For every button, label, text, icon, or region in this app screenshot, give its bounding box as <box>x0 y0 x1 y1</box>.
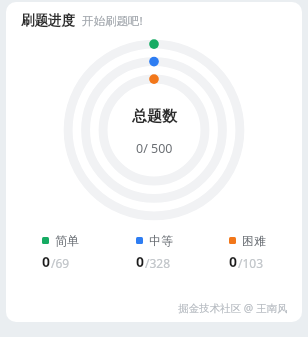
staticText: 刷题进度 <box>21 12 75 29</box>
staticText: 中等 <box>149 233 173 248</box>
button[interactable]: 简单 <box>42 233 79 271</box>
staticText: 简单 <box>55 233 79 248</box>
staticText: 0 <box>42 252 51 271</box>
button[interactable]: 困难 <box>229 233 266 271</box>
staticText: /328 <box>145 255 171 271</box>
staticText: 开始刷题吧! <box>82 13 143 29</box>
staticText: 掘金技术社区 @ 王南风 <box>178 301 288 315</box>
staticText: 0 <box>136 252 145 271</box>
staticText: 0/ 500 <box>136 140 173 157</box>
staticText: /69 <box>51 255 70 271</box>
staticText: /103 <box>238 255 264 271</box>
staticText: 0 <box>229 252 238 271</box>
button[interactable]: 中等 <box>136 233 173 271</box>
staticText: 困难 <box>242 233 266 248</box>
staticText: 总题数 <box>132 107 177 126</box>
